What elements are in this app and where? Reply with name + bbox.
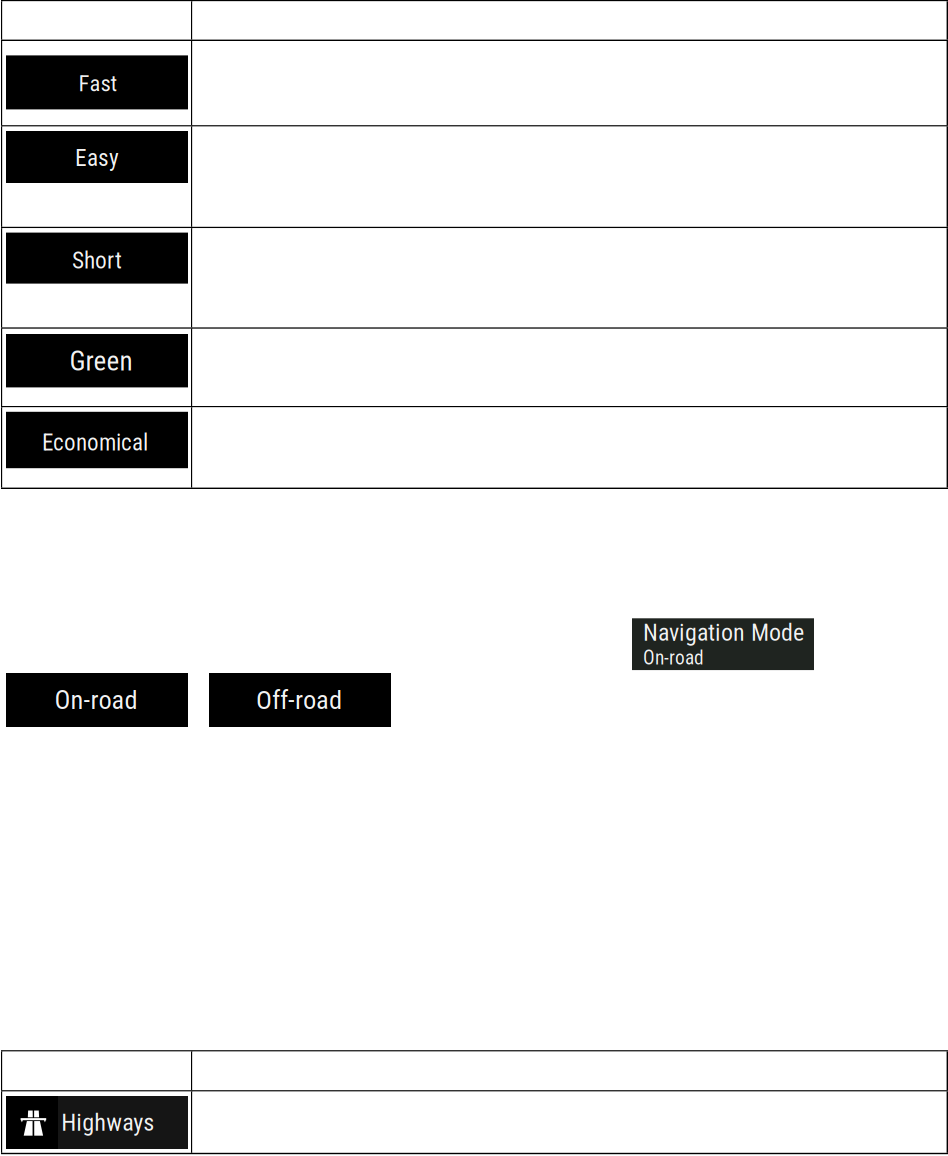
button[interactable]: On-road	[6, 673, 188, 727]
button[interactable]: Off-road	[209, 673, 391, 727]
button[interactable]: Green	[6, 334, 188, 387]
button[interactable]: Fast	[6, 55, 188, 109]
button[interactable]: Short	[6, 233, 188, 284]
staticText: On-road	[54, 684, 137, 715]
staticText: Navigation Mode	[643, 618, 804, 647]
button[interactable]: Highways	[6, 1096, 188, 1149]
button[interactable]: Easy	[6, 131, 188, 183]
staticText: Economical	[42, 429, 148, 456]
button[interactable]: Economical	[6, 412, 188, 468]
staticText: Fast	[78, 70, 117, 97]
staticText: Easy	[75, 144, 119, 172]
staticText: On-road	[643, 647, 704, 669]
staticText: Green	[69, 345, 132, 377]
staticText: Short	[72, 247, 122, 274]
staticText: Off-road	[256, 684, 342, 716]
staticText: Highways	[61, 1108, 154, 1137]
